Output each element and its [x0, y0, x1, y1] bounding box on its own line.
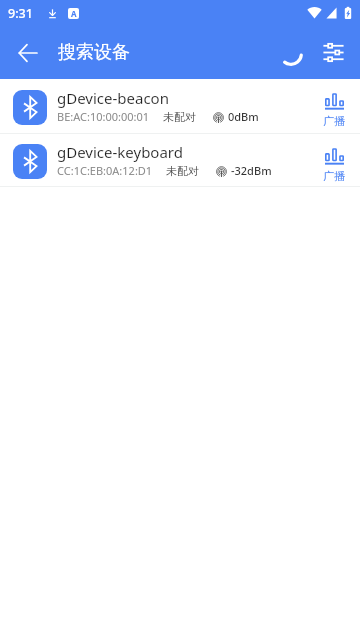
- staticText: CC:1C:EB:0A:12:D1: [57, 163, 153, 178]
- staticText: 搜索设备: [58, 41, 130, 64]
- button[interactable]: 广播: [313, 79, 355, 133]
- staticText: 广播: [323, 114, 345, 128]
- button[interactable]: 广播: [313, 134, 355, 186]
- button[interactable]: Filter: [311, 26, 355, 79]
- staticText: 广播: [323, 169, 345, 183]
- staticText: A: [71, 8, 77, 19]
- staticText: 0dBm: [228, 109, 259, 124]
- button[interactable]: Back: [0, 26, 55, 79]
- staticText: BE:AC:10:00:00:01: [57, 109, 150, 124]
- button[interactable]: gDevice-keyboard: [0, 134, 360, 186]
- staticText: gDevice-beacon: [57, 88, 169, 108]
- staticText: 未配对: [166, 164, 199, 178]
- staticText: 9:31: [8, 5, 33, 22]
- staticText: gDevice-keyboard: [57, 142, 183, 162]
- staticText: 未配对: [163, 110, 196, 124]
- staticText: -32dBm: [231, 163, 272, 178]
- button[interactable]: gDevice-beacon: [0, 79, 360, 133]
